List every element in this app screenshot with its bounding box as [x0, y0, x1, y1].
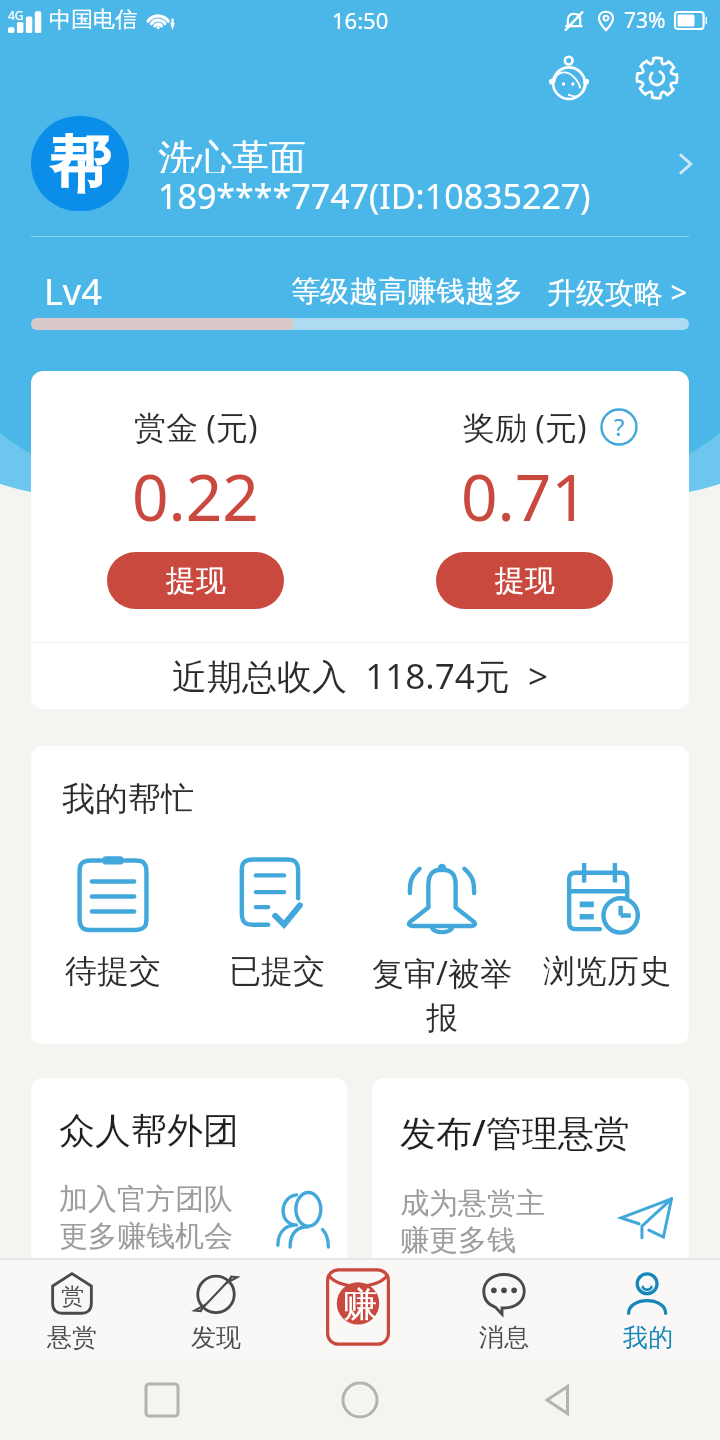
button[interactable]: 帮助说明 — [599, 407, 639, 447]
button[interactable]: 设置 — [626, 47, 688, 109]
staticText: 赚更多钱 — [400, 1222, 516, 1259]
staticText: Lv4 — [44, 267, 102, 316]
staticText: 赏 — [61, 1282, 84, 1311]
button[interactable]: 最近任务 — [126, 1364, 198, 1436]
button[interactable]: 我的 — [576, 1260, 720, 1360]
staticText: 复审/被举报 — [366, 951, 518, 1038]
staticText: 加入官方团队 — [59, 1181, 233, 1218]
staticText: ? — [614, 410, 625, 443]
staticText: 提现 — [495, 562, 555, 600]
staticText: 发布/管理悬赏 — [400, 1108, 630, 1157]
staticText: 近期总收入 118.74元 > — [172, 652, 548, 700]
staticText: 提现 — [166, 562, 226, 600]
staticText: 赚 — [343, 1283, 377, 1326]
staticText: 升级攻略 > — [547, 272, 688, 312]
staticText: 成为悬赏主 — [400, 1185, 545, 1222]
button[interactable]: 客服 — [538, 47, 600, 109]
button[interactable]: 消息 — [432, 1260, 576, 1360]
staticText: 189****7747(ID:10835227) — [158, 173, 591, 219]
button[interactable]: 提现 — [436, 552, 613, 609]
staticText: 赏金 (元) — [134, 405, 258, 449]
staticText: 等级越高赚钱越多 — [291, 273, 523, 310]
staticText: 奖励 (元) — [463, 405, 587, 449]
staticText: 帮 — [49, 126, 111, 204]
staticText: 浏览历史 — [531, 951, 683, 991]
button[interactable]: 升级攻略 > — [547, 272, 688, 312]
staticText: 消息 — [479, 1322, 529, 1353]
staticText: 悬赏 — [47, 1322, 97, 1353]
button[interactable]: 复审/被举报 — [359, 849, 524, 1038]
staticText: 0.22 — [132, 453, 259, 540]
button[interactable]: 众人帮外团 — [31, 1078, 347, 1313]
button[interactable]: 发现 — [144, 1260, 288, 1360]
staticText: 众人帮外团 — [59, 1108, 239, 1153]
staticText: 0.71 — [461, 453, 588, 540]
button[interactable]: 待提交 — [31, 849, 195, 991]
staticText: 4G — [8, 7, 24, 23]
staticText: 已提交 — [201, 951, 353, 991]
button[interactable]: 浏览历史 — [524, 849, 689, 991]
staticText: 待提交 — [37, 951, 189, 991]
button[interactable]: 已提交 — [195, 849, 359, 991]
staticText: 16:50 — [332, 5, 389, 35]
button[interactable]: 赏 — [0, 1260, 144, 1360]
button[interactable]: 帮 — [0, 116, 720, 236]
staticText: 发现 — [191, 1322, 241, 1353]
staticText: 洗心革面 — [158, 135, 306, 173]
staticText: 中国电信 — [49, 6, 137, 34]
staticText: 我的 — [623, 1322, 673, 1353]
button[interactable]: 返回 — [522, 1364, 594, 1436]
button[interactable]: 近期总收入 118.74元 > — [31, 643, 689, 709]
button[interactable]: 主页 — [324, 1364, 396, 1436]
staticText: 更多赚钱机会 — [59, 1218, 233, 1255]
staticText: 我的帮忙 — [62, 778, 194, 820]
button[interactable]: 提现 — [107, 552, 284, 609]
staticText: 73% — [624, 6, 666, 35]
button[interactable]: 发布/管理悬赏 — [372, 1078, 689, 1313]
button[interactable]: 赚钱 — [318, 1267, 402, 1347]
